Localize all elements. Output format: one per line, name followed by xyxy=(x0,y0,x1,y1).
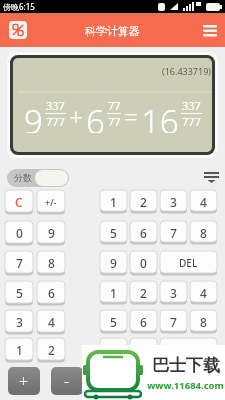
staticText: 傍晚6:15 xyxy=(3,1,63,12)
button[interactable]: × xyxy=(94,367,126,395)
staticText: 77 xyxy=(108,114,121,129)
staticText: 5 xyxy=(110,225,117,241)
button[interactable]: 5 xyxy=(100,221,127,244)
button[interactable] xyxy=(199,21,221,39)
button[interactable]: DEL xyxy=(160,251,217,275)
button[interactable]: 分数 xyxy=(7,169,69,187)
button[interactable]: 3 xyxy=(160,281,187,304)
button[interactable]: 6 xyxy=(37,281,65,305)
button[interactable]: 8 xyxy=(190,310,217,333)
staticText: 337 xyxy=(182,98,201,113)
staticText: + xyxy=(19,370,29,392)
button[interactable]: 0 xyxy=(130,251,157,275)
button[interactable] xyxy=(201,166,223,186)
staticText: 9 xyxy=(110,342,117,358)
staticText: - xyxy=(64,370,70,392)
staticText: 4 xyxy=(48,314,55,330)
staticText: 4 xyxy=(200,194,207,210)
button[interactable]: 0 xyxy=(130,338,157,362)
button[interactable]: 9 xyxy=(100,338,127,362)
staticText: 9 xyxy=(48,225,55,241)
staticText: 6 xyxy=(86,99,105,133)
staticText: 0 xyxy=(16,225,23,241)
staticText: 6 xyxy=(48,285,55,301)
button[interactable]: 7 xyxy=(160,221,187,244)
staticText: 2 xyxy=(48,342,55,358)
staticText: = xyxy=(124,100,138,133)
staticText: 3 xyxy=(170,285,177,301)
button[interactable]: 0 xyxy=(5,221,33,245)
staticText: 6 xyxy=(140,314,147,330)
button[interactable]: 4 xyxy=(37,310,65,334)
staticText: 7 xyxy=(170,314,177,330)
button[interactable]: 7 xyxy=(5,251,33,275)
button[interactable]: 5 xyxy=(100,310,127,333)
button[interactable]: +/- xyxy=(37,190,65,214)
button[interactable]: C xyxy=(5,190,33,214)
staticText: 7 xyxy=(170,225,177,241)
staticText: C xyxy=(15,194,23,210)
staticText: 4 xyxy=(200,285,207,301)
button[interactable]: 6 xyxy=(130,310,157,333)
staticText: 2 xyxy=(140,194,147,210)
staticText: 777 xyxy=(182,114,201,129)
staticText: www.11684.com xyxy=(146,379,225,392)
staticText: 16 xyxy=(141,99,179,133)
button[interactable]: 2 xyxy=(130,190,157,213)
button[interactable]: 6 xyxy=(130,221,157,244)
staticText: 分数 xyxy=(14,172,32,183)
staticText: DEL xyxy=(179,256,198,270)
button[interactable]: 2 xyxy=(130,281,157,304)
button[interactable]: 3 xyxy=(160,190,187,213)
staticText: 3 xyxy=(170,194,177,210)
staticText: + xyxy=(69,100,83,133)
button[interactable]: 5 xyxy=(5,281,33,305)
button[interactable]: 9 xyxy=(100,251,127,275)
staticText: 77 xyxy=(108,98,121,113)
button[interactable]: 4 xyxy=(190,190,217,213)
button[interactable]: 4 xyxy=(190,281,217,304)
staticText: 337 xyxy=(46,98,65,113)
staticText: 3 xyxy=(16,314,23,330)
button[interactable]: + xyxy=(8,367,40,395)
staticText: 9 xyxy=(110,255,117,271)
staticText: 777 xyxy=(46,114,65,129)
staticText: 8 xyxy=(200,225,207,241)
staticText: (16.433719) xyxy=(100,65,211,77)
staticText: 5 xyxy=(16,285,23,301)
button[interactable]: 2 xyxy=(37,338,65,362)
staticText: 1 xyxy=(110,194,117,210)
staticText: 8 xyxy=(200,314,207,330)
staticText: 7 xyxy=(16,255,23,271)
staticText: 巴士下载 xyxy=(148,355,224,376)
button[interactable]: DEL xyxy=(160,338,217,362)
button[interactable]: 1 xyxy=(100,190,127,213)
staticText: 1 xyxy=(110,285,117,301)
staticText: 5 xyxy=(110,314,117,330)
staticText: +/- xyxy=(45,196,57,208)
button[interactable]: 3 xyxy=(5,310,33,334)
button[interactable]: 1 xyxy=(5,338,33,362)
button[interactable] xyxy=(9,21,27,39)
staticText: 1 xyxy=(16,342,23,358)
button[interactable]: 9 xyxy=(37,221,65,245)
staticText: 2 xyxy=(140,285,147,301)
staticText: 9 xyxy=(24,99,43,133)
button[interactable]: - xyxy=(51,367,83,395)
staticText: 0 xyxy=(140,255,147,271)
staticText: 8 xyxy=(48,255,55,271)
button[interactable]: 8 xyxy=(37,251,65,275)
staticText: 6 xyxy=(140,225,147,241)
staticText: 科学计算器 xyxy=(0,24,225,38)
staticText: × xyxy=(105,370,115,392)
button[interactable]: 7 xyxy=(160,310,187,333)
button[interactable]: 1 xyxy=(100,281,127,304)
button[interactable] xyxy=(82,345,225,400)
button[interactable]: 8 xyxy=(190,221,217,244)
